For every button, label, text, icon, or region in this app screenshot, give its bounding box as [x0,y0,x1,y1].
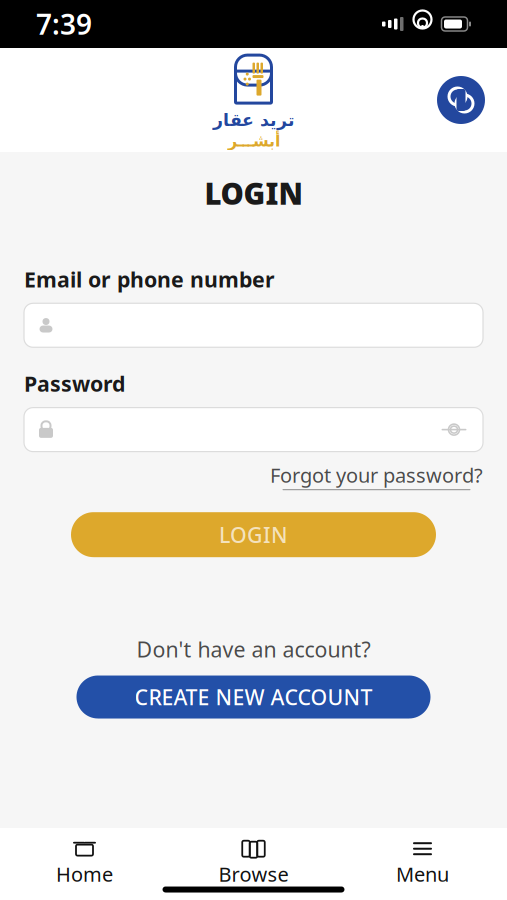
button[interactable]: Browse [169,840,338,886]
staticText: LOGIN [204,174,302,213]
button[interactable]: Menu [338,840,507,886]
button[interactable]: Call us [437,76,485,124]
staticText: أبشـــر [227,132,279,150]
button[interactable]: Forgot your password? [24,452,483,490]
staticText: Menu [396,861,449,887]
staticText: Don't have an account? [136,635,370,663]
staticText: Password [24,369,125,398]
staticText: Home [56,861,113,887]
staticText: Email or phone number [24,265,275,293]
button[interactable]: LOGIN [71,512,436,557]
staticText: Forgot your password? [270,462,483,488]
button[interactable]: Home [0,840,169,886]
staticText: CREATE NEW ACCOUNT [134,683,372,711]
staticText: Browse [218,861,288,887]
button[interactable]: CREATE NEW ACCOUNT [76,675,430,718]
staticText: 7:39 [36,5,92,43]
staticText: LOGIN [219,520,288,549]
staticText: تريد عقار [212,110,294,130]
